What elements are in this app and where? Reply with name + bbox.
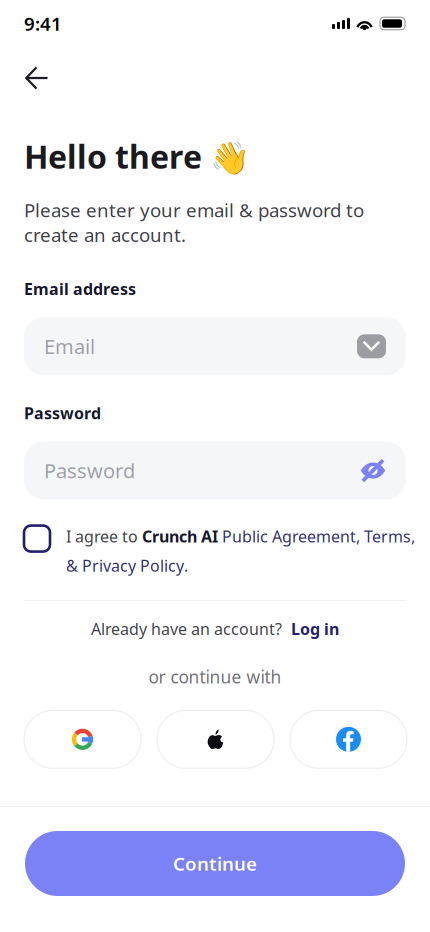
staticText: Crunch AI xyxy=(142,526,222,547)
button[interactable]: Continue with Apple xyxy=(157,710,274,768)
staticText: Password xyxy=(44,457,135,484)
staticText: 9:41 xyxy=(24,11,62,36)
staticText: Log in xyxy=(291,618,339,639)
staticText: Public Agreement, Terms, xyxy=(222,526,415,547)
staticText: Hello there 👋 xyxy=(24,135,250,177)
staticText: Email xyxy=(44,333,95,360)
button[interactable]: Log in xyxy=(291,618,339,639)
staticText: & Privacy Policy. xyxy=(66,555,188,576)
staticText: Password xyxy=(24,402,101,423)
staticText: or continue with xyxy=(148,665,281,688)
staticText: Please enter your email & password to cr… xyxy=(24,197,364,247)
staticText: Already have an account? xyxy=(91,618,282,639)
staticText: Email address xyxy=(24,278,136,299)
staticText: Continue xyxy=(173,851,257,876)
button[interactable]: Continue with Facebook xyxy=(290,710,407,768)
button[interactable]: Continue xyxy=(25,831,405,896)
button[interactable]: Agree to the terms xyxy=(24,526,50,552)
button[interactable]: Back xyxy=(24,56,68,100)
button[interactable]: Continue with Google xyxy=(24,710,141,768)
staticText: I agree to xyxy=(66,526,142,547)
